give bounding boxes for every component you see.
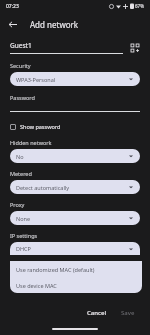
staticText: Use randomized MAC (default) <box>16 266 95 273</box>
button[interactable]: Scan QR code <box>129 42 140 53</box>
button[interactable]: None <box>10 211 140 225</box>
button[interactable]: Use device MAC <box>10 277 142 293</box>
staticText: Security <box>10 62 31 69</box>
staticText: Password <box>10 94 35 101</box>
button[interactable]: DHCP <box>10 242 140 255</box>
button[interactable]: Use randomized MAC (default) <box>10 261 142 277</box>
staticText: Use device MAC <box>16 282 57 289</box>
staticText: IP settings <box>10 232 38 239</box>
button[interactable]: Save <box>116 306 140 320</box>
staticText: Detect automatically <box>16 184 128 191</box>
staticText: Guest1 <box>10 41 32 50</box>
staticText: Proxy <box>10 201 25 208</box>
button[interactable]: No <box>10 149 140 163</box>
button[interactable]: Cancel <box>82 306 112 320</box>
staticText: DHCP <box>16 245 128 252</box>
staticText: No <box>16 153 128 160</box>
staticText: 07:23 <box>6 3 19 10</box>
staticText: None <box>16 215 128 222</box>
staticText: Metered <box>10 170 32 177</box>
button[interactable]: WPA3-Personal <box>10 72 140 86</box>
button[interactable]: Detect automatically <box>10 180 140 194</box>
button[interactable]: Back <box>0 12 24 36</box>
staticText: Show password <box>20 123 61 130</box>
staticText: Hidden network <box>10 139 52 146</box>
staticText: Cancel <box>87 309 107 317</box>
staticText: 67% <box>135 3 144 9</box>
button[interactable]: Show password <box>10 123 61 130</box>
staticText: Save <box>121 309 135 317</box>
staticText: Add network <box>30 19 79 30</box>
staticText: WPA3-Personal <box>16 76 128 83</box>
button[interactable]: Guest1 <box>10 41 140 54</box>
